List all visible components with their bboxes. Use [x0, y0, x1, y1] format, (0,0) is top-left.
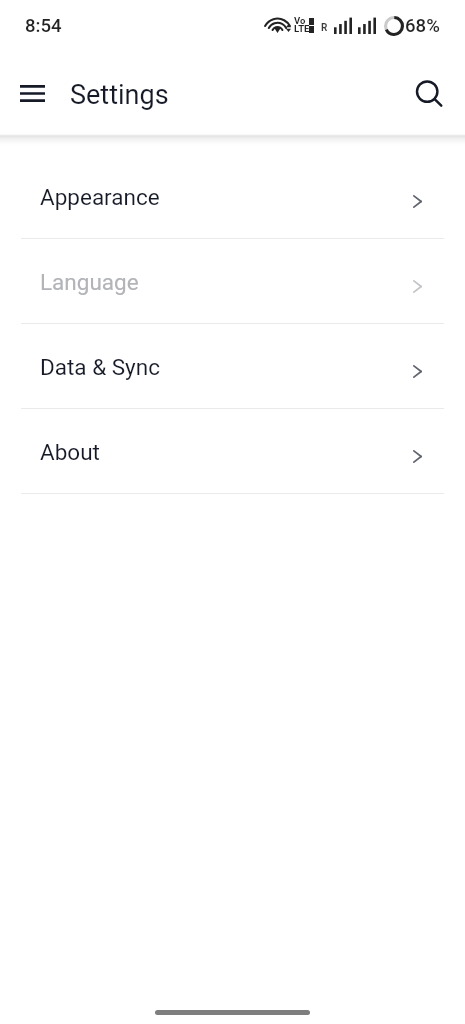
button[interactable]: Search	[406, 70, 454, 118]
button[interactable]: Appearance	[0, 154, 465, 238]
staticText: LTE	[294, 23, 310, 34]
staticText: Settings	[70, 79, 169, 111]
button[interactable]: About	[0, 409, 465, 493]
button[interactable]: Language	[0, 239, 465, 323]
button[interactable]: Menu	[8, 69, 56, 117]
staticText: Appearance	[40, 184, 160, 210]
staticText: 8:54	[25, 15, 62, 37]
staticText: About	[40, 439, 100, 465]
staticText: Vo	[294, 15, 306, 26]
button[interactable]: Data & Sync	[0, 324, 465, 408]
staticText: 68%	[405, 15, 440, 37]
staticText: Language	[40, 269, 139, 295]
staticText: R	[321, 22, 328, 34]
staticText: Data & Sync	[40, 354, 160, 380]
